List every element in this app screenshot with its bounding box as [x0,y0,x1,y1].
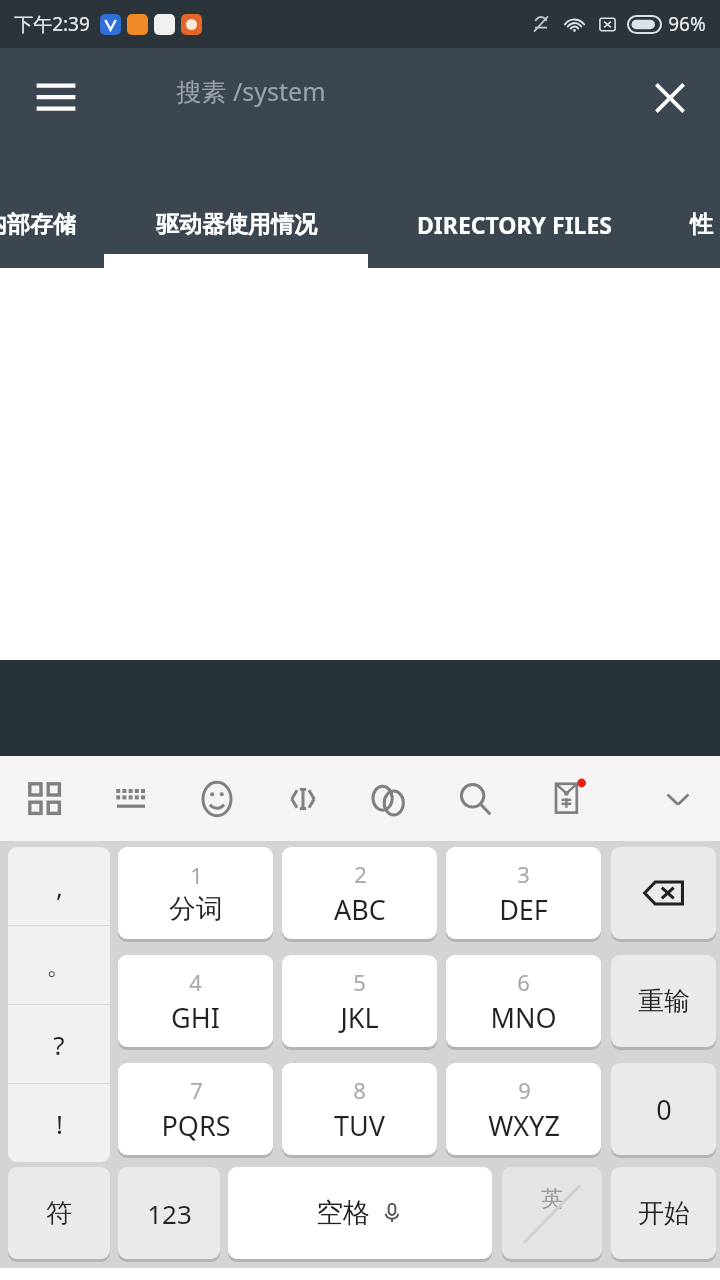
staticText: 英 [541,1185,563,1213]
staticText: 符 [46,1197,72,1230]
staticText: MNO [490,999,557,1036]
button[interactable]: 。 [8,926,110,1004]
button[interactable]: 搜素 /system [176,74,326,108]
button[interactable]: 4 [118,955,273,1047]
staticText: 内部存储 [0,210,76,239]
button[interactable]: 开始 [611,1167,716,1259]
button[interactable]: Keyboard [101,756,161,841]
button[interactable] [611,847,716,939]
button[interactable]: 7 [118,1063,273,1155]
staticText: 3 [517,859,530,889]
staticText: 开始 [638,1197,690,1230]
button[interactable]: 5 [282,955,437,1047]
staticText: DIRECTORY FILES [417,209,612,240]
button[interactable]: 1 [118,847,273,939]
staticText: 。 [46,949,72,982]
button[interactable]: 空格 [228,1167,492,1259]
staticText: ? [53,1027,65,1062]
staticText: 1 [190,860,203,890]
staticText: 分词 [169,892,223,926]
staticText: 0 [656,1091,672,1128]
staticText: 4 [189,967,202,997]
button[interactable]: Red packet [538,756,598,841]
button[interactable]: 英 [502,1167,602,1259]
button[interactable]: 0 [611,1063,716,1155]
staticText: 9 [518,1075,531,1105]
button[interactable]: 3 [446,847,601,939]
button[interactable]: 123 [118,1167,220,1259]
button[interactable]: Emoji [187,756,247,841]
button[interactable]: , [8,847,110,925]
button[interactable]: Menu [20,62,92,134]
staticText: 重输 [638,985,690,1018]
button[interactable]: Edit [273,756,333,841]
staticText: 空格 [316,1196,370,1230]
staticText: 下午2:39 [14,11,90,37]
staticText: ABC [334,891,386,928]
staticText: 8 [353,1075,366,1105]
staticText: PQRS [161,1107,231,1144]
button[interactable]: 6 [446,955,601,1047]
button[interactable]: Collapse [648,756,708,841]
button[interactable]: 8 [282,1063,437,1155]
button[interactable]: ? [8,1005,110,1083]
staticText: TUV [334,1107,385,1144]
button[interactable]: Apps [15,756,75,841]
button[interactable]: 符 [8,1167,110,1259]
staticText: , [56,869,63,904]
staticText: 2 [354,859,367,889]
staticText: 123 [147,1196,192,1231]
button[interactable]: 驱动器使用情况 [104,180,368,268]
staticText: 驱动器使用情况 [156,210,317,239]
button[interactable]: , [8,847,110,1162]
button[interactable]: Clip [359,756,419,841]
button[interactable]: 9 [446,1063,601,1155]
button[interactable]: Search [445,756,505,841]
staticText: DEF [499,891,548,928]
staticText: 搜素 /system [176,74,326,108]
button[interactable]: Close [638,66,702,130]
staticText: ! [56,1106,63,1141]
button[interactable]: ! [8,1084,110,1162]
staticText: GHI [171,999,220,1036]
staticText: 性 [690,210,713,239]
staticText: 5 [353,967,366,997]
staticText: JKL [340,999,379,1036]
staticText: 6 [517,967,530,997]
staticText: 96% [668,11,706,37]
staticText: WXYZ [488,1107,560,1144]
button[interactable]: 内部存储 [0,180,100,268]
staticText: 7 [190,1075,203,1105]
button[interactable]: 性 [690,180,720,268]
button[interactable]: 2 [282,847,437,939]
button[interactable]: DIRECTORY FILES [380,180,648,268]
button[interactable]: 重输 [611,955,716,1047]
